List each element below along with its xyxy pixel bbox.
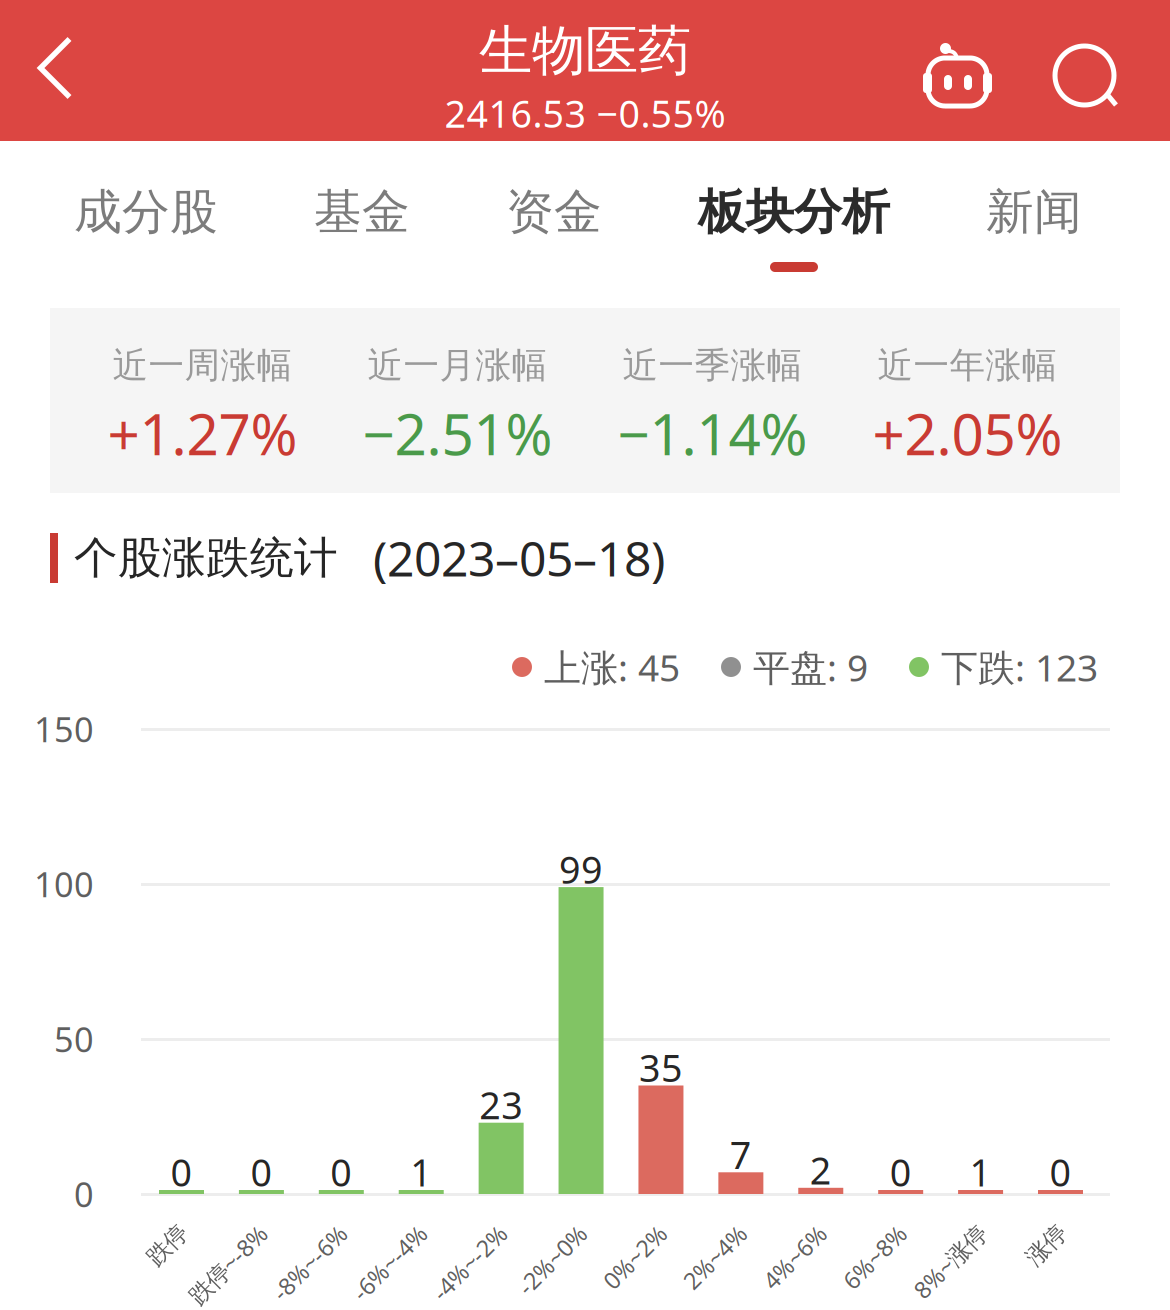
staticText: 涨停	[1016, 1214, 1062, 1244]
button[interactable]: Search	[0, 0, 115, 141]
staticText: 0%~2%	[584, 1213, 663, 1245]
staticText: 23	[479, 1079, 523, 1130]
button[interactable]: 新闻	[986, 146, 1082, 296]
staticText: 平盘: 9	[753, 642, 868, 692]
staticText: 近一季涨幅	[622, 343, 802, 388]
staticText: -4%~-2%	[408, 1213, 503, 1245]
staticText: 近一年涨幅	[877, 343, 1057, 388]
staticText: 上涨: 45	[544, 642, 680, 692]
staticText: 板块分析	[698, 182, 890, 242]
staticText: 生物医药	[479, 17, 691, 84]
staticText: 4%~6%	[744, 1213, 823, 1245]
staticText: 8%~涨停	[891, 1213, 983, 1245]
staticText: 150	[34, 706, 94, 752]
staticText: 0	[74, 1171, 94, 1217]
staticText: +2.05%	[872, 395, 1062, 472]
staticText: 基金	[314, 182, 410, 242]
staticText: -2%~0%	[496, 1213, 583, 1245]
staticText: 35	[639, 1042, 683, 1093]
button[interactable]: Back	[0, 0, 110, 141]
staticText: 1	[970, 1146, 992, 1198]
button[interactable]: AI assistant	[0, 0, 120, 141]
button[interactable]: 成分股	[74, 146, 218, 296]
staticText: 0	[170, 1146, 192, 1198]
staticText: 跌停	[137, 1214, 183, 1244]
button[interactable]: 资金	[506, 146, 602, 296]
staticText: 1	[410, 1146, 432, 1198]
staticText: (2023–05–18)	[373, 525, 665, 591]
button[interactable]: 基金	[314, 146, 410, 296]
staticText: 跌停~-8%	[163, 1213, 263, 1245]
staticText: 0	[330, 1146, 352, 1198]
staticText: 2416.53 −0.55%	[444, 87, 725, 139]
staticText: -6%~-4%	[328, 1213, 423, 1245]
staticText: 新闻	[986, 182, 1082, 242]
staticText: 6%~8%	[824, 1213, 903, 1245]
staticText: 50	[54, 1016, 94, 1062]
staticText: 近一月涨幅	[367, 343, 547, 388]
staticText: 2	[810, 1144, 832, 1195]
staticText: 下跌: 123	[941, 642, 1098, 692]
staticText: −2.51%	[362, 395, 552, 472]
staticText: 近一周涨幅	[112, 343, 292, 388]
staticText: 100	[34, 861, 94, 907]
staticText: 0	[890, 1146, 912, 1198]
staticText: 个股涨跌统计	[74, 530, 338, 585]
staticText: −1.14%	[617, 395, 807, 472]
button[interactable]: 板块分析	[698, 146, 890, 296]
staticText: +1.27%	[107, 395, 297, 472]
staticText: -8%~-6%	[248, 1213, 343, 1245]
staticText: 0	[250, 1146, 272, 1198]
staticText: 2%~4%	[664, 1213, 743, 1245]
staticText: 资金	[506, 182, 602, 242]
staticText: 99	[559, 843, 603, 895]
staticText: 7	[730, 1129, 752, 1180]
staticText: 0	[1049, 1146, 1071, 1198]
staticText: 成分股	[74, 182, 218, 242]
